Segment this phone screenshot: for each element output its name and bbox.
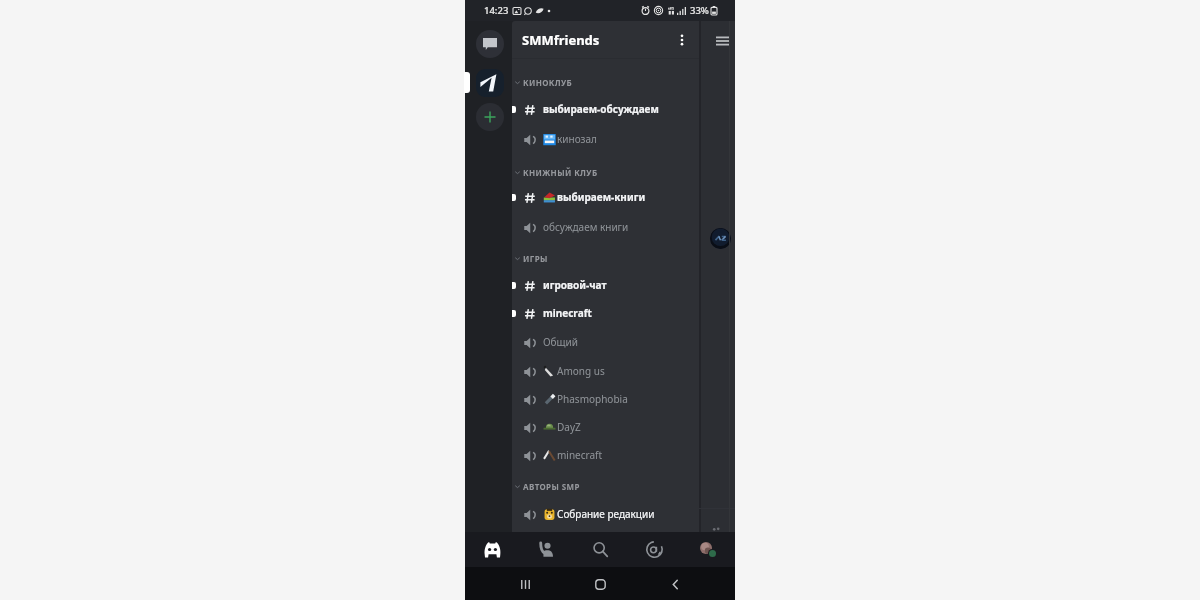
button[interactable]: DayZ — [512, 413, 699, 441]
button[interactable]: выбираем-книги — [512, 183, 699, 211]
button[interactable]: игровой-чат — [512, 271, 699, 299]
button[interactable]: Recents — [510, 569, 540, 599]
staticText: КИНОКЛУБ — [523, 77, 573, 88]
staticText: Собрание редакции — [557, 507, 655, 521]
staticText: кинозал — [557, 132, 597, 146]
staticText: игровой-чат — [543, 278, 607, 292]
staticText: АВТОРЫ SMP — [523, 481, 580, 492]
button[interactable]: Mentions — [627, 532, 681, 567]
staticText: обсуждаем книги — [543, 220, 629, 234]
button[interactable]: Home — [585, 569, 615, 599]
button[interactable]: ИГРЫ — [515, 247, 699, 269]
staticText: Phasmophobia — [557, 392, 628, 406]
button[interactable]: Back — [660, 569, 690, 599]
button[interactable]: Profile — [681, 532, 735, 567]
button[interactable]: Собрание редакции — [512, 500, 699, 528]
staticText: КНИЖНЫЙ КЛУБ — [523, 167, 598, 178]
button[interactable]: АВТОРЫ SMP — [515, 475, 699, 497]
staticText: ИГРЫ — [523, 253, 548, 264]
staticText: minecraft — [543, 306, 592, 320]
button[interactable]: Members — [712, 31, 732, 51]
button[interactable]: Phasmophobia — [512, 385, 699, 413]
button[interactable]: Among us — [512, 357, 699, 385]
button[interactable]: Add a server — [476, 103, 504, 131]
button[interactable]: Friends — [519, 532, 573, 567]
button[interactable]: КНИЖНЫЙ КЛУБ — [515, 161, 699, 183]
button[interactable]: КИНОКЛУБ — [515, 71, 699, 93]
staticText: 33% — [690, 4, 709, 17]
staticText: minecraft — [557, 448, 603, 462]
button[interactable]: обсуждаем книги — [512, 213, 699, 241]
staticText: Общий — [543, 335, 578, 349]
button[interactable]: Общий — [512, 328, 699, 356]
button[interactable]: SMMfriends server — [476, 69, 504, 97]
button[interactable]: minecraft — [512, 299, 699, 327]
staticText: 14:23 — [484, 4, 509, 17]
staticText: SMMfriends — [522, 31, 600, 49]
button[interactable]: Direct messages — [476, 30, 504, 58]
button[interactable]: кинозал — [512, 125, 699, 153]
staticText: DayZ — [557, 420, 581, 434]
button[interactable]: minecraft — [512, 441, 699, 469]
button[interactable]: More options — [670, 28, 694, 52]
staticText: выбираем-книги — [557, 190, 646, 204]
button[interactable]: Home — [465, 532, 519, 567]
button[interactable]: выбираем-обсуждаем — [512, 95, 699, 123]
staticText: выбираем-обсуждаем — [543, 102, 659, 116]
button[interactable]: Search — [573, 532, 627, 567]
staticText: Among us — [557, 364, 605, 378]
